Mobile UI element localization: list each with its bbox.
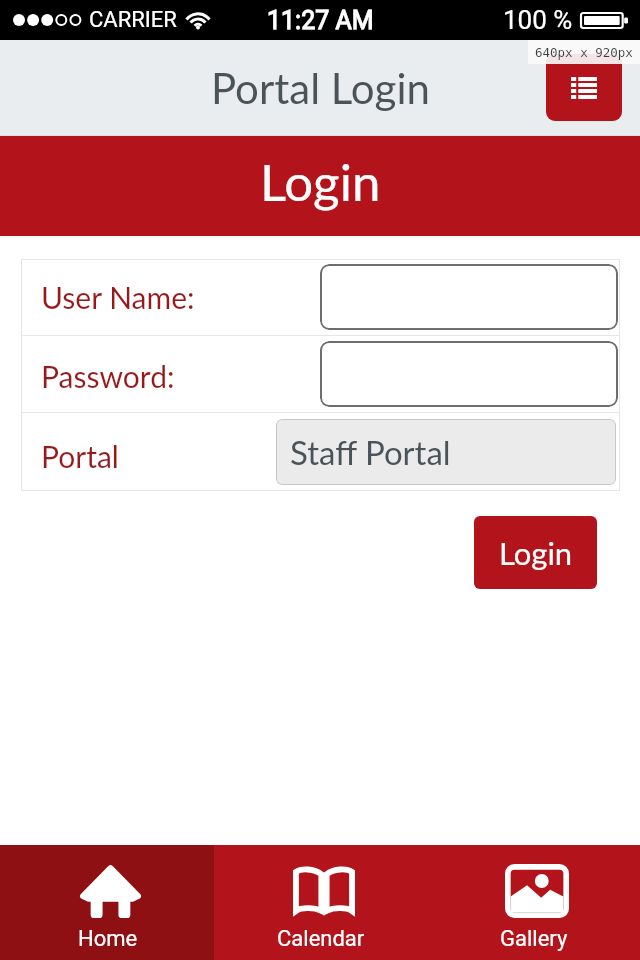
button[interactable]: Home xyxy=(0,845,214,960)
staticText: Portal xyxy=(41,438,276,474)
staticText: Login xyxy=(260,151,381,212)
staticText: Calendar xyxy=(277,926,365,952)
staticText: Home xyxy=(78,926,138,952)
button[interactable]: Staff Portal xyxy=(276,419,616,485)
staticText: CARRIER xyxy=(89,7,177,33)
staticText: 11:27 AM xyxy=(267,6,374,35)
staticText: Login xyxy=(499,534,573,571)
staticText: Portal Login xyxy=(211,63,430,113)
button[interactable]: Menu xyxy=(546,54,622,121)
button[interactable]: Calendar xyxy=(214,845,427,960)
button[interactable] xyxy=(320,341,618,407)
staticText: User Name: xyxy=(41,279,320,315)
button[interactable]: Gallery xyxy=(427,845,640,960)
staticText: 100 % xyxy=(503,5,573,35)
button[interactable] xyxy=(320,264,618,330)
button[interactable]: Login xyxy=(474,516,597,589)
staticText: Staff Portal xyxy=(290,432,451,472)
staticText: Password: xyxy=(41,358,320,394)
staticText: Gallery xyxy=(500,926,568,952)
staticText: 640px x 920px xyxy=(535,45,633,60)
